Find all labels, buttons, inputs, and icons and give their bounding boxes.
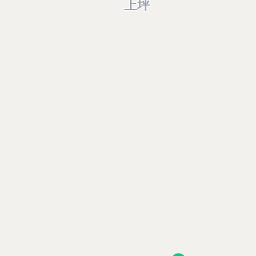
staticText: 上坪 xyxy=(125,0,151,14)
staticText: 上坪 xyxy=(123,0,149,13)
staticText: 上坪 xyxy=(123,0,149,14)
staticText: 上坪 xyxy=(124,0,150,13)
staticText: 上坪 xyxy=(124,0,150,12)
staticText: 上坪 xyxy=(124,0,150,13)
staticText: 上坪 xyxy=(124,0,150,14)
staticText: 上坪 xyxy=(123,0,149,12)
staticText: 上坪 xyxy=(125,0,151,12)
staticText: 上坪 xyxy=(125,0,151,13)
